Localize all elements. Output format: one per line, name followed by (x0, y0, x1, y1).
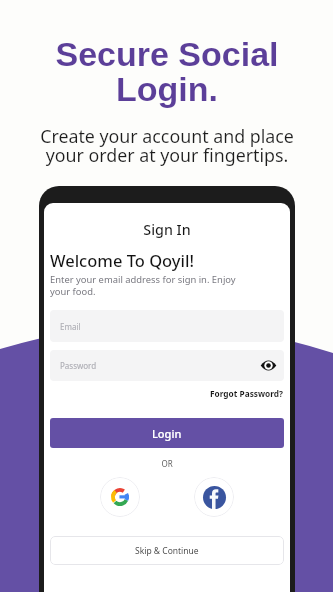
staticText: Skip & Continue (135, 545, 199, 557)
button[interactable]: Show password (260, 357, 277, 374)
staticText: Email (60, 321, 81, 332)
button[interactable]: Skip & Continue (50, 536, 284, 565)
button[interactable]: Password (50, 350, 284, 381)
staticText: Enter your email address for sign in. En… (50, 273, 236, 298)
staticText: Secure Social Login. (55, 35, 279, 108)
staticText: Sign In (50, 220, 284, 239)
button[interactable]: Login (50, 418, 284, 448)
staticText: Welcome To Qoyil! (50, 249, 194, 271)
staticText: Login (152, 426, 182, 441)
button[interactable]: Email (50, 310, 284, 342)
staticText: Password (60, 360, 97, 371)
button[interactable]: Sign in with Google (100, 477, 140, 517)
staticText: OR (50, 458, 284, 469)
button[interactable]: Sign in with Facebook (194, 477, 234, 517)
button[interactable]: Forgot Password? (210, 388, 284, 399)
staticText: Create your account and place your order… (40, 124, 294, 167)
